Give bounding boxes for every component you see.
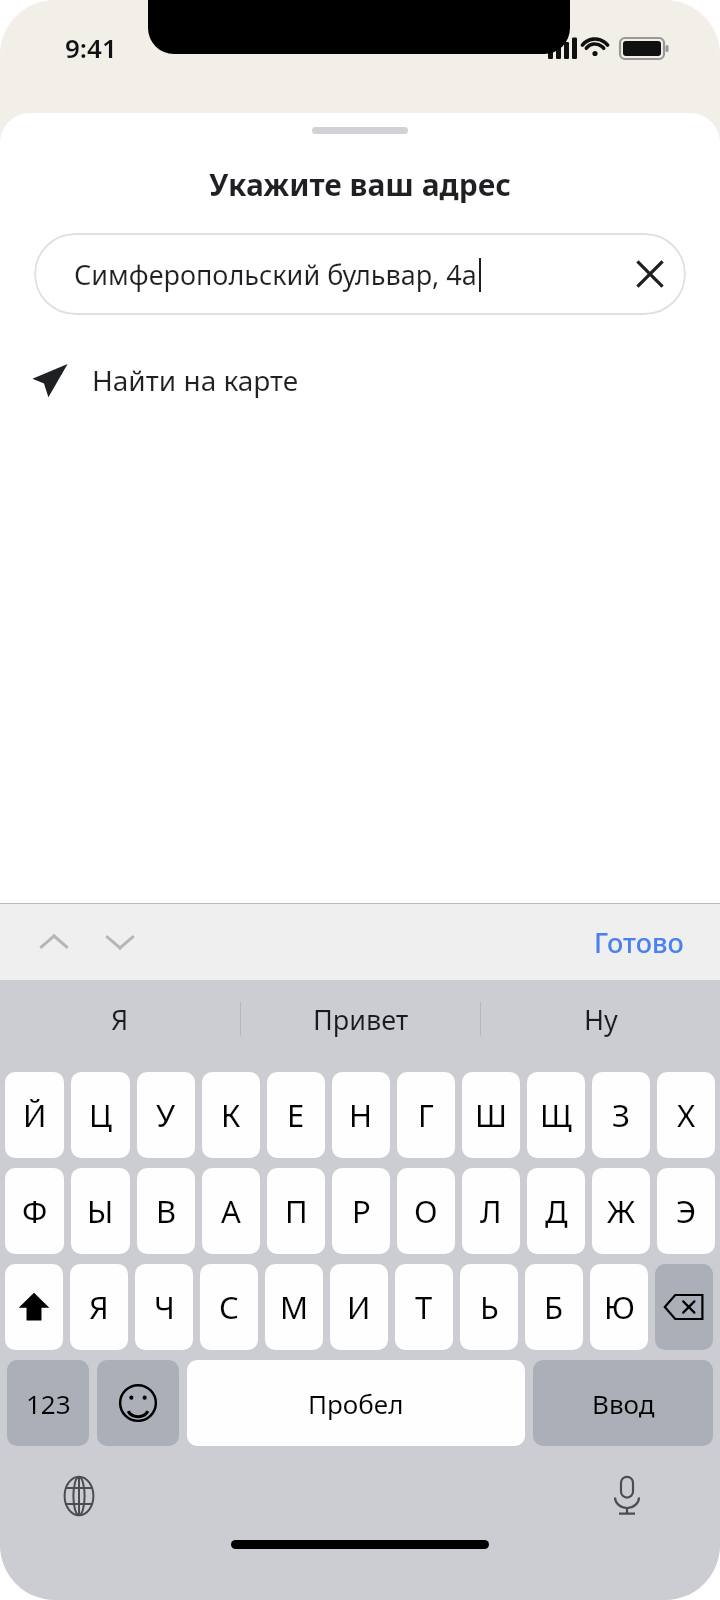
button[interactable]: И xyxy=(330,1264,388,1350)
button[interactable]: П xyxy=(267,1168,325,1254)
button[interactable]: 123 xyxy=(7,1360,89,1446)
button[interactable]: Я xyxy=(0,980,240,1058)
button[interactable]: К xyxy=(202,1072,260,1158)
button[interactable]: Х xyxy=(657,1072,715,1158)
button[interactable]: Е xyxy=(267,1072,325,1158)
button[interactable]: Ш xyxy=(462,1072,520,1158)
button[interactable]: Щ xyxy=(527,1072,585,1158)
button[interactable]: Привет xyxy=(241,980,480,1058)
button[interactable]: Р xyxy=(332,1168,390,1254)
staticText: В xyxy=(156,1190,177,1232)
staticText: Д xyxy=(545,1190,568,1232)
button[interactable]: Эмодзи xyxy=(97,1360,179,1446)
staticText: М xyxy=(280,1286,309,1328)
staticText: Т xyxy=(415,1286,433,1328)
button[interactable]: М xyxy=(265,1264,323,1350)
button[interactable]: Удалить xyxy=(655,1264,713,1350)
staticText: Привет xyxy=(313,1001,409,1038)
staticText: К xyxy=(221,1094,241,1136)
button[interactable]: Ы xyxy=(71,1168,130,1254)
staticText: Ь xyxy=(480,1286,499,1328)
staticText: Ввод xyxy=(592,1386,655,1421)
staticText: Ж xyxy=(607,1190,636,1232)
button[interactable]: Симферопольский бульвар, 4а xyxy=(34,233,686,315)
staticText: Б xyxy=(544,1286,564,1328)
button[interactable]: У xyxy=(137,1072,195,1158)
staticText: О xyxy=(414,1190,438,1232)
staticText: Щ xyxy=(540,1094,572,1136)
staticText: Я xyxy=(111,1001,129,1038)
staticText: 123 xyxy=(26,1386,71,1421)
button[interactable]: С xyxy=(200,1264,258,1350)
button[interactable]: Пробел xyxy=(187,1360,525,1446)
staticText: Ч xyxy=(154,1286,175,1328)
staticText: Х xyxy=(677,1094,696,1136)
button[interactable]: Голосовой ввод xyxy=(596,1465,658,1527)
button[interactable]: В xyxy=(137,1168,195,1254)
staticText: Укажите ваш адрес xyxy=(0,164,720,205)
staticText: П xyxy=(285,1190,308,1232)
button[interactable]: Найти на карте xyxy=(0,343,720,417)
button[interactable]: Ж xyxy=(592,1168,650,1254)
button[interactable]: Э xyxy=(657,1168,715,1254)
button[interactable]: Ю xyxy=(590,1264,648,1350)
staticText: Ю xyxy=(604,1286,635,1328)
staticText: А xyxy=(221,1190,241,1232)
button[interactable]: О xyxy=(397,1168,455,1254)
button[interactable]: Предыдущее поле xyxy=(24,912,84,972)
staticText: Ш xyxy=(475,1094,508,1136)
button[interactable]: Н xyxy=(332,1072,390,1158)
staticText: Я xyxy=(89,1286,109,1328)
staticText: Пробел xyxy=(308,1386,404,1421)
button[interactable]: Следующее поле xyxy=(90,912,150,972)
staticText: Ну xyxy=(584,1001,618,1038)
button[interactable]: Сменить язык xyxy=(48,1465,110,1527)
staticText: Ы xyxy=(87,1190,114,1232)
staticText: С xyxy=(219,1286,239,1328)
staticText: Н xyxy=(349,1094,373,1136)
button[interactable]: Ч xyxy=(135,1264,193,1350)
button[interactable]: Ц xyxy=(71,1072,130,1158)
button[interactable]: А xyxy=(202,1168,260,1254)
button[interactable]: Shift xyxy=(5,1264,63,1350)
staticText: Э xyxy=(676,1190,697,1232)
button[interactable]: Г xyxy=(397,1072,455,1158)
button[interactable]: Ввод xyxy=(533,1360,713,1446)
button[interactable]: Д xyxy=(527,1168,585,1254)
staticText: Ф xyxy=(22,1190,48,1232)
staticText: Г xyxy=(418,1094,434,1136)
button[interactable]: Очистить xyxy=(614,238,686,310)
staticText: Готово xyxy=(594,924,684,961)
button[interactable]: Готово xyxy=(584,914,694,971)
staticText: Р xyxy=(352,1190,371,1232)
staticText: У xyxy=(156,1094,176,1136)
button[interactable]: Я xyxy=(70,1264,128,1350)
staticText: Найти на карте xyxy=(92,361,299,399)
staticText: Е xyxy=(287,1094,305,1136)
button[interactable]: Ь xyxy=(460,1264,518,1350)
button[interactable]: З xyxy=(592,1072,650,1158)
button[interactable]: Л xyxy=(462,1168,520,1254)
staticText: Л xyxy=(480,1190,502,1232)
button[interactable]: Ну xyxy=(481,980,720,1058)
staticText: Й xyxy=(23,1094,47,1136)
staticText: З xyxy=(612,1094,630,1136)
button[interactable]: Ф xyxy=(5,1168,64,1254)
staticText: И xyxy=(347,1286,371,1328)
staticText: Ц xyxy=(89,1094,112,1136)
button[interactable]: Т xyxy=(395,1264,453,1350)
button[interactable]: Б xyxy=(525,1264,583,1350)
button[interactable]: Й xyxy=(5,1072,64,1158)
staticText: Симферопольский бульвар, 4а xyxy=(74,256,477,293)
staticText: 9:41 xyxy=(65,30,117,65)
